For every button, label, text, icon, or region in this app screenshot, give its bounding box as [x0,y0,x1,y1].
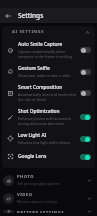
staticText: Still photography options [17,181,60,186]
button[interactable]: Off [80,90,91,96]
button[interactable]: On [80,136,91,142]
staticText: VIDEO [17,192,33,198]
staticText: PHOTO [17,174,35,180]
staticText: Smart Composition [18,84,63,91]
button[interactable]: Shot Optimization [2,105,95,129]
staticText: Enhance photos with automatic tuning and… [18,116,77,126]
staticText: Motion capture settings [17,199,58,204]
button[interactable]: PHOTO [0,171,97,189]
staticText: Gesture Selfie [18,65,50,72]
staticText: Google Lens [18,153,47,160]
staticText: Settings [18,11,44,20]
button[interactable]: On [80,114,91,120]
staticText: Low Light AI [18,132,47,139]
button[interactable]: AI SETTINGS [2,26,95,38]
staticText: Enhance low light selfie photos [18,140,71,145]
staticText: AI SETTINGS [12,29,45,35]
button[interactable]: Google Lens [2,148,95,165]
button[interactable]: Off [80,69,91,75]
staticText: Show your palm to take a selfie [18,73,71,78]
staticText: Automatically level and implement the ru… [18,92,77,102]
button[interactable]: Off [80,47,91,53]
button[interactable]: Gesture Selfie [2,62,95,81]
staticText: Shot Optimization [18,108,60,115]
button[interactable]: On [80,154,91,160]
button[interactable]: Smart Composition [2,81,95,105]
button[interactable]: VIDEO [0,189,97,207]
staticText: Capture automatically when everyone in t… [18,49,77,59]
button[interactable]: Back [0,8,15,23]
staticText: BATTERY SETTINGS [17,210,65,213]
button[interactable]: Low Light AI [2,129,95,148]
button[interactable]: Auto Smile Capture [2,38,95,62]
button[interactable]: BATTERY SETTINGS [0,207,97,216]
staticText: Auto Smile Capture [18,41,63,48]
